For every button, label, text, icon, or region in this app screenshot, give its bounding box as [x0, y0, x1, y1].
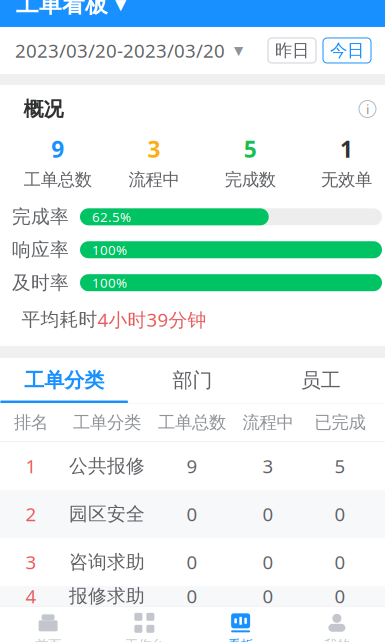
staticText: 我的	[324, 637, 350, 642]
staticText: 0	[186, 584, 197, 608]
staticText: 5	[334, 454, 345, 478]
staticText: 园区安全	[69, 503, 145, 525]
staticText: 0	[334, 550, 345, 574]
button[interactable]: 部门	[128, 358, 257, 403]
button[interactable]: 说明	[354, 96, 380, 122]
staticText: 0	[334, 584, 345, 608]
staticText: 4小时39分钟	[97, 307, 206, 332]
button[interactable]: 昨日	[268, 38, 316, 63]
staticText: 工单总数	[24, 169, 92, 190]
button[interactable]: 今日	[323, 38, 371, 63]
staticText: 工单分类	[73, 412, 141, 433]
staticText: 2	[25, 502, 36, 526]
staticText: 完成率	[12, 205, 69, 228]
staticText: 概况	[23, 97, 63, 121]
button[interactable]: 员工	[257, 358, 385, 403]
staticText: 0	[186, 550, 197, 574]
staticText: 首页	[35, 637, 61, 642]
staticText: 1	[25, 454, 36, 478]
staticText: 1	[340, 134, 353, 164]
staticText: 响应率	[12, 238, 69, 261]
staticText: 2023/03/20-2023/03/20	[15, 38, 225, 63]
staticText: 0	[334, 502, 345, 526]
staticText: 100%	[92, 274, 127, 291]
staticText: 看板	[228, 637, 254, 642]
staticText: 工单看板	[16, 0, 108, 18]
staticText: 咨询求助	[69, 551, 145, 573]
staticText: 及时率	[12, 271, 69, 294]
staticText: 0	[262, 584, 273, 608]
staticText: 公共报修	[69, 455, 145, 477]
staticText: 0	[186, 502, 197, 526]
staticText: 工作台	[125, 637, 164, 642]
staticText: 工单分类	[24, 368, 104, 393]
staticText: 62.5%	[92, 208, 131, 226]
staticText: 昨日	[275, 40, 309, 61]
button[interactable]: 工作台	[96, 606, 192, 642]
staticText: 工单总数	[158, 412, 226, 433]
staticText: 5	[244, 134, 257, 164]
staticText: 流程中	[128, 169, 179, 190]
button[interactable]: 2023/03/20-2023/03/20	[0, 28, 243, 73]
button[interactable]: 3	[0, 538, 385, 586]
staticText: ▼	[115, 0, 126, 13]
staticText: ▼	[234, 44, 243, 57]
staticText: 4	[25, 584, 36, 608]
staticText: 流程中	[242, 412, 293, 433]
staticText: 3	[147, 134, 160, 164]
staticText: 报修求助	[69, 585, 145, 607]
staticText: 100%	[92, 241, 127, 259]
button[interactable]: 看板	[192, 606, 289, 642]
staticText: 员工	[301, 368, 341, 393]
staticText: 今日	[330, 40, 364, 61]
staticText: 0	[262, 550, 273, 574]
button[interactable]: 工单看板	[0, 0, 136, 26]
staticText: 无效单	[321, 169, 372, 190]
staticText: 9	[186, 454, 197, 478]
staticText: 3	[25, 550, 36, 574]
button[interactable]: ⌂	[0, 606, 96, 642]
staticText: 0	[262, 502, 273, 526]
button[interactable]: 工单分类	[0, 358, 128, 403]
button[interactable]: 2	[0, 490, 385, 538]
button[interactable]: 1	[0, 442, 385, 490]
button[interactable]: 我的	[289, 606, 385, 642]
staticText: 9	[51, 134, 64, 164]
staticText: 完成数	[225, 169, 276, 190]
button[interactable]: 4	[0, 572, 385, 620]
staticText: 3	[262, 454, 273, 478]
staticText: 平均耗时	[21, 308, 97, 331]
staticText: 已完成	[314, 412, 365, 433]
staticText: i	[366, 100, 369, 118]
staticText: 部门	[172, 368, 212, 393]
staticText: 排名	[14, 412, 48, 433]
